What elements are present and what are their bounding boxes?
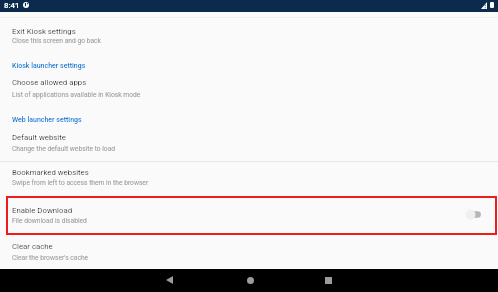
staticText: List of applications available in Kiosk … [12,91,141,99]
staticText: Close this screen and go back [12,37,101,45]
staticText: Enable Download [12,206,73,215]
staticText: Web launcher settings [12,116,82,124]
staticText: 8:41 [4,1,20,10]
button[interactable]: Home [233,271,268,289]
button[interactable] [0,70,498,105]
button[interactable] [0,125,498,161]
button[interactable] [0,196,498,235]
button[interactable] [0,235,498,267]
button[interactable]: Recent apps [311,271,346,289]
staticText: Swipe from left to access them in the br… [12,179,149,187]
button[interactable]: Back [152,271,187,289]
staticText: Default website [12,133,66,142]
staticText: Clear cache [12,242,53,251]
button[interactable] [0,16,498,50]
staticText: Bookmarked websites [12,168,89,177]
button[interactable]: Enable Download toggle [458,203,488,227]
staticText: Exit Kiosk settings [12,27,76,36]
staticText: Choose allowed apps [12,78,87,87]
button[interactable] [0,161,498,196]
staticText: Clear the browser's cache [12,254,89,262]
staticText: Change the default website to load [12,145,116,153]
staticText: Kiosk launcher settings [12,62,86,70]
staticText: File download is disabled [12,217,87,225]
